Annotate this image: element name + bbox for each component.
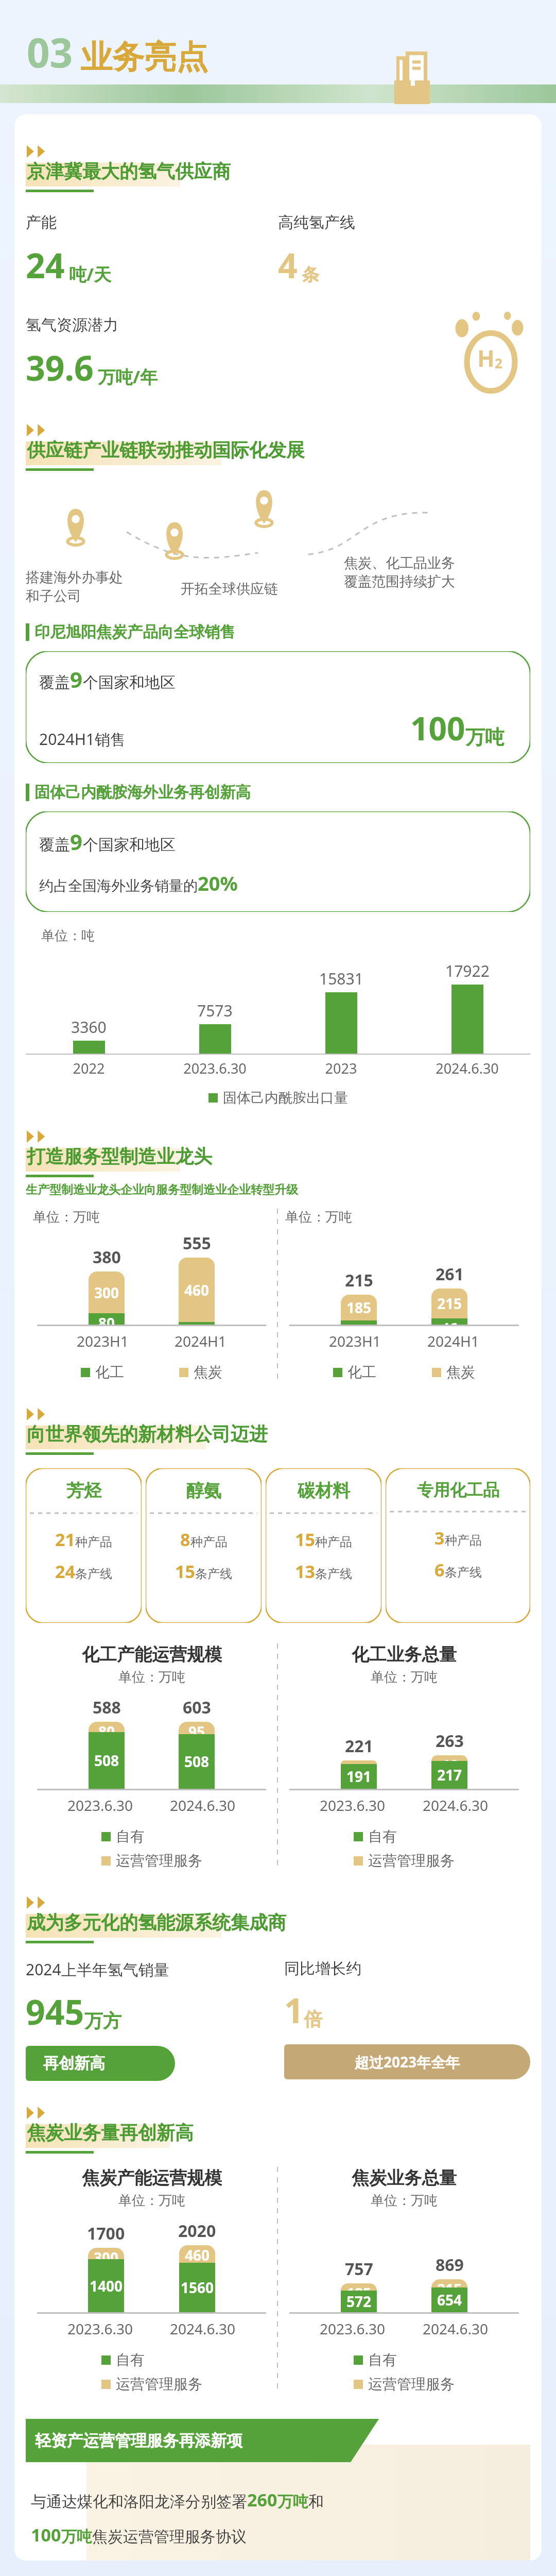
button[interactable]: 碳材料	[266, 1468, 381, 1623]
staticText: 1560	[181, 2278, 214, 2297]
staticText: 7573	[197, 1000, 233, 1021]
staticText: 572	[346, 2292, 372, 2311]
button[interactable]: 芳烃	[26, 1468, 142, 1623]
staticText: 自有	[368, 2351, 397, 2369]
staticText: 215	[437, 2279, 462, 2287]
staticText: 21	[55, 1528, 75, 1551]
staticText: 03	[27, 25, 73, 79]
staticText: 焦炭、化工品业务 覆盖范围持续扩大	[344, 554, 530, 590]
staticText: 化工业务总量	[352, 1643, 457, 1666]
staticText: 成为多元化的氢能源系统集成商	[27, 1911, 286, 1934]
staticText: 万吨/年	[98, 365, 158, 388]
staticText: 吨/天	[69, 262, 112, 286]
button[interactable]: 超过2023年全年	[284, 2044, 530, 2079]
staticText: 向世界领先的新材料公司迈进	[27, 1422, 268, 1446]
staticText: 与通达煤化和洛阳龙泽分别签署	[31, 2492, 247, 2512]
staticText: 业务亮点	[80, 37, 208, 77]
staticText: 2024.6.30	[170, 1795, 236, 1815]
staticText: 2020	[178, 2219, 216, 2242]
staticText: 2023	[278, 1059, 404, 1078]
staticText: 80	[98, 1722, 115, 1732]
staticText: 单位：吨	[41, 927, 95, 944]
staticText: 条产线	[445, 1565, 482, 1580]
staticText: 95	[188, 1322, 205, 1325]
other: Report	[387, 52, 439, 104]
staticText: 约占全国海外业务销量的	[39, 877, 198, 895]
staticText: 3360	[71, 1016, 107, 1038]
staticText: 和	[308, 2492, 324, 2512]
staticText: 焦炭运营管理服务协议	[92, 2527, 247, 2547]
staticText: 2024上半年氢气销量	[26, 1959, 169, 1980]
staticText: 运营管理服务	[116, 1852, 202, 1870]
staticText: 运营管理服务	[368, 1852, 455, 1870]
staticText: 供应链产业链联动推动国际化发展	[27, 438, 305, 462]
staticText: 万方	[84, 2009, 121, 2032]
staticText: 2023.6.30	[67, 1795, 133, 1815]
staticText: 300	[94, 2248, 119, 2259]
staticText: 9	[70, 665, 83, 694]
staticText: 261	[436, 1263, 464, 1285]
staticText: 个国家和地区	[83, 835, 176, 855]
staticText: 条产线	[195, 1566, 232, 1582]
staticText: 焦炭业务总量	[352, 2167, 457, 2189]
staticText: 380	[93, 1246, 121, 1268]
button[interactable]: 专用化工品	[386, 1468, 530, 1623]
staticText: 化工产能运营规模	[82, 1643, 222, 1666]
staticText: 2024.6.30	[423, 2319, 489, 2338]
staticText: 30	[351, 1320, 368, 1325]
staticText: 2023H1	[77, 1331, 129, 1351]
staticText: 条产线	[75, 1566, 112, 1582]
staticText: 自有	[368, 1827, 397, 1845]
staticText: 460	[185, 2245, 210, 2263]
staticText: 9	[70, 827, 83, 856]
staticText: 1700	[87, 2222, 125, 2245]
staticText: 碳材料	[298, 1480, 350, 1502]
staticText: 芳烃	[66, 1480, 101, 1502]
staticText: 95	[188, 1722, 205, 1734]
button[interactable]: 再创新高	[26, 2046, 175, 2081]
staticText: 185	[346, 2283, 372, 2291]
staticText: 2024H1	[175, 1331, 227, 1351]
staticText: 6	[435, 1558, 445, 1582]
staticText: 460	[184, 1280, 210, 1300]
button[interactable]: 覆盖	[26, 811, 530, 912]
staticText: 2023.6.30	[152, 1059, 278, 1078]
staticText: 种产品	[445, 1533, 482, 1548]
staticText: 搭建海外办事处 和子公司	[26, 569, 181, 605]
staticText: 4	[278, 242, 298, 288]
staticText: 100	[410, 706, 465, 750]
staticText: 20%	[198, 870, 238, 896]
staticText: 603	[183, 1696, 211, 1719]
staticText: 588	[93, 1696, 121, 1719]
staticText: 2024.6.30	[423, 1795, 489, 1815]
staticText: 高纯氢产线	[278, 213, 355, 232]
staticText: 508	[94, 1751, 119, 1770]
staticText: 2023H1	[329, 1331, 381, 1351]
staticText: 万吨	[61, 2527, 92, 2547]
staticText: 条	[302, 264, 319, 286]
staticText: 化工	[95, 1363, 124, 1381]
staticText: 种产品	[315, 1534, 352, 1550]
staticText: 260	[247, 2488, 277, 2512]
staticText: 3	[435, 1526, 445, 1550]
staticText: 固体己内酰胺出口量	[223, 1089, 348, 1107]
staticText: 自有	[116, 2351, 145, 2369]
staticText: 2022	[26, 1059, 152, 1078]
button[interactable]: 覆盖	[26, 651, 530, 763]
staticText: 2024.6.30	[170, 2319, 236, 2338]
button[interactable]: 醇氨	[146, 1468, 262, 1623]
staticText: 种产品	[190, 1534, 228, 1550]
staticText: 运营管理服务	[116, 2375, 202, 2393]
staticText: 215	[437, 1294, 462, 1313]
staticText: 再创新高	[43, 2054, 105, 2073]
staticText: 2023.6.30	[320, 1795, 386, 1815]
staticText: 单位：万吨	[33, 1209, 277, 1226]
staticText: 17922	[445, 960, 490, 981]
staticText: 运营管理服务	[368, 2375, 455, 2393]
staticText: 2024H1销售	[39, 728, 126, 750]
staticText: 555	[183, 1232, 211, 1255]
staticText: 24	[55, 1560, 75, 1583]
staticText: 焦炭	[194, 1363, 222, 1381]
staticText: 1	[284, 1987, 304, 2033]
staticText: 508	[184, 1752, 210, 1771]
